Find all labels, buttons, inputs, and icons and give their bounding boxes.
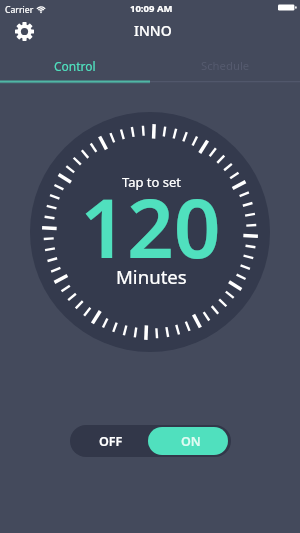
button[interactable]: Schedule: [150, 48, 300, 83]
staticText: Tap to set: [122, 173, 182, 191]
staticText: 120: [80, 170, 221, 282]
staticText: Schedule: [201, 58, 250, 73]
button[interactable]: OFF: [70, 425, 151, 457]
staticText: 10:09 AM: [130, 2, 173, 15]
staticText: OFF: [99, 433, 123, 450]
button[interactable]: Settings: [10, 17, 38, 45]
staticText: Control: [54, 58, 96, 74]
staticText: INNO: [134, 21, 172, 40]
staticText: Minutes: [116, 264, 187, 289]
staticText: ON: [181, 433, 201, 450]
button[interactable]: Control: [0, 48, 150, 83]
staticText: Carrier: [5, 4, 34, 16]
button[interactable]: ON: [150, 425, 231, 457]
